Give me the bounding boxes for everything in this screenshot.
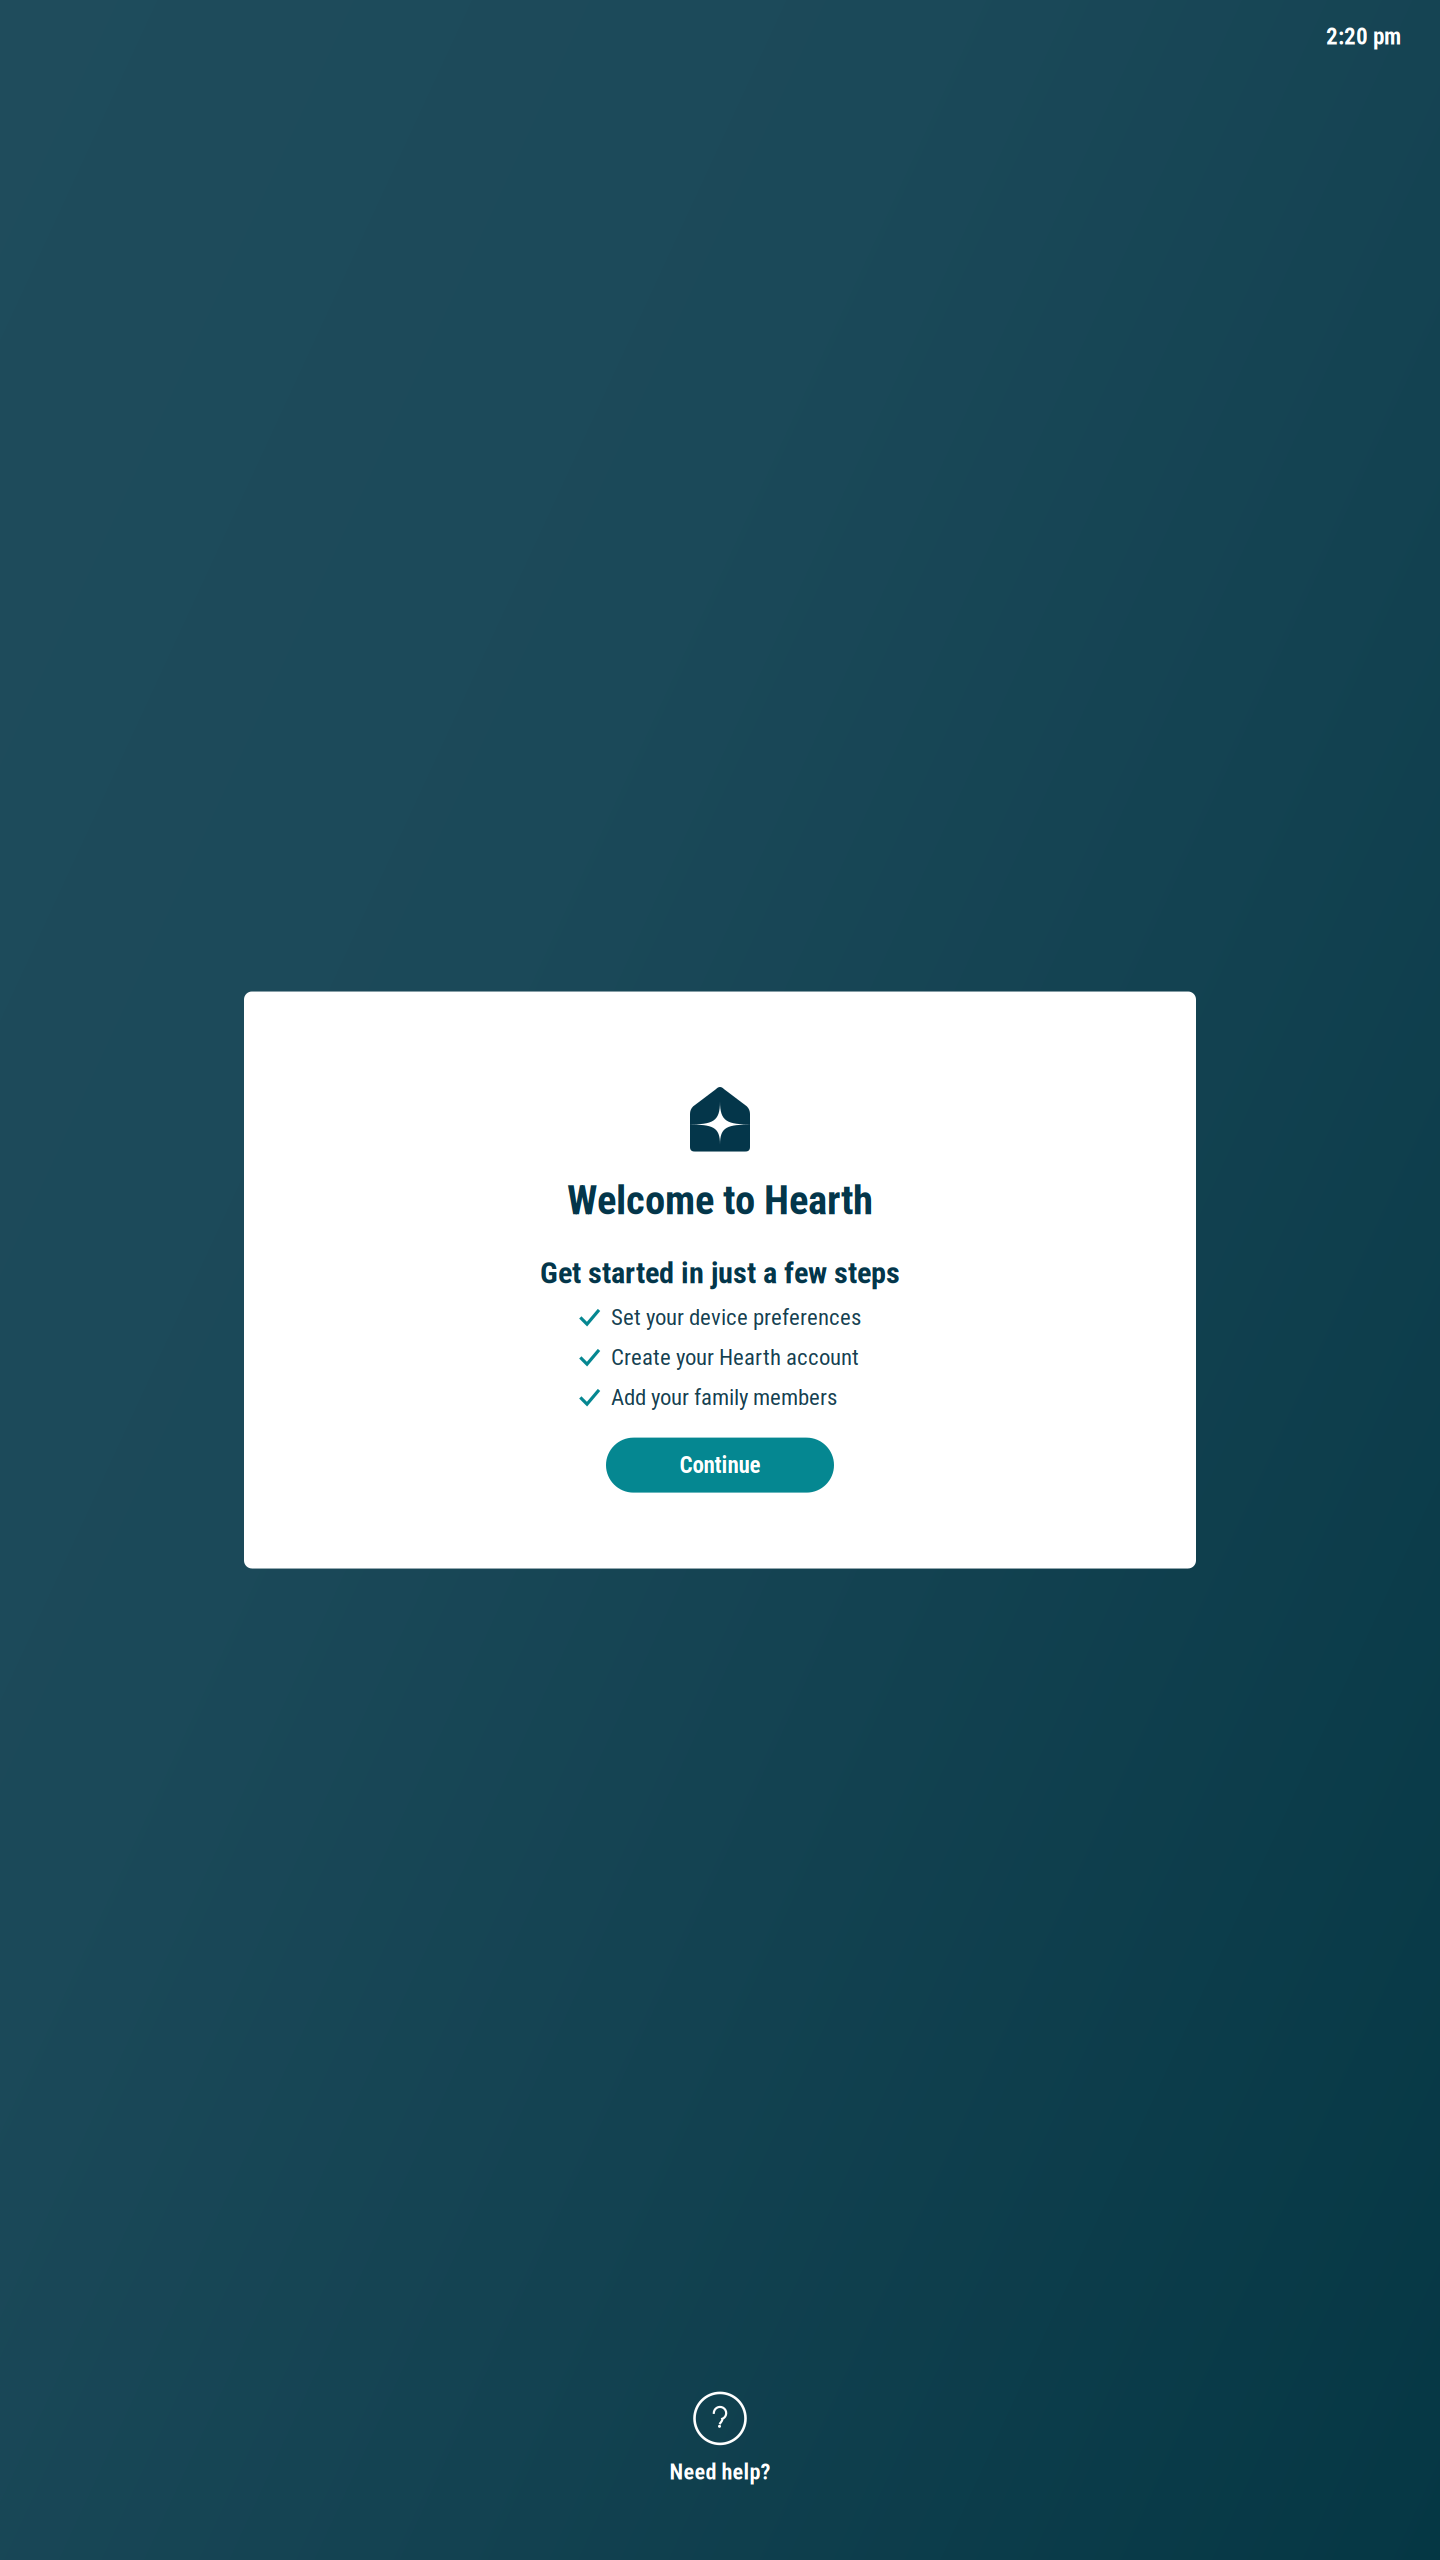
staticText: Need help? — [669, 2459, 770, 2485]
staticText: Add your family members — [611, 1384, 837, 1410]
staticText: Get started in just a few steps — [540, 1255, 900, 1291]
button[interactable]: Continue — [606, 1438, 834, 1493]
button[interactable]: Need help? — [669, 2392, 770, 2485]
staticText: Set your device preferences — [611, 1304, 861, 1330]
staticText: Continue — [679, 1452, 760, 1479]
staticText: 2:20 pm — [1326, 23, 1401, 50]
staticText: Create your Hearth account — [611, 1344, 859, 1370]
staticText: Welcome to Hearth — [567, 1176, 873, 1224]
